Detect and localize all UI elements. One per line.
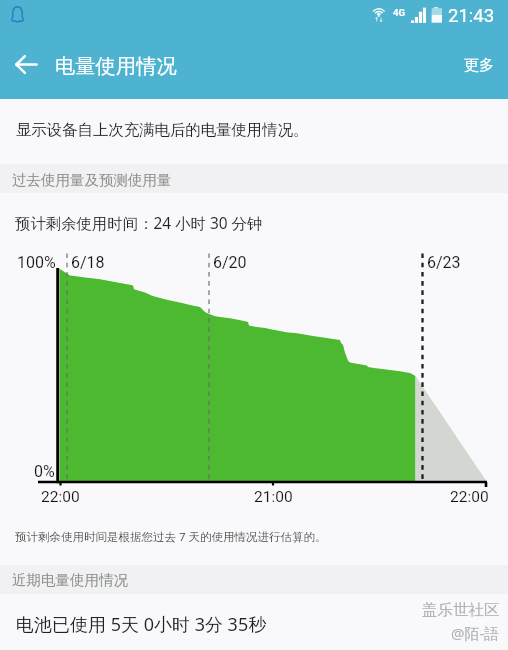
staticText: 6/18 xyxy=(71,253,105,272)
staticText: 100% xyxy=(17,253,56,272)
staticText: 21:00 xyxy=(254,488,293,506)
staticText: 6/20 xyxy=(213,253,247,272)
staticText: @陌-語 xyxy=(451,623,500,643)
staticText: 4G xyxy=(393,7,405,18)
staticText: 预计剩余使用时间是根据您过去 7 天的使用情况进行估算的。 xyxy=(15,529,327,545)
staticText: 0% xyxy=(34,462,55,481)
staticText: 电池已使用 5天 0小时 3分 35秒 xyxy=(16,612,267,637)
staticText: 显示设备自上次充满电后的电量使用情况。 xyxy=(16,120,309,139)
button[interactable]: 更多 xyxy=(449,40,508,90)
staticText: 盖乐世社区 xyxy=(422,600,500,620)
button[interactable]: Back xyxy=(0,39,52,89)
staticText: 22:00 xyxy=(41,488,80,506)
staticText: 预计剩余使用时间：24 小时 30 分钟 xyxy=(15,213,263,234)
staticText: 更多 xyxy=(464,56,494,75)
staticText: 6/23 xyxy=(427,253,461,272)
staticText: 近期电量使用情况 xyxy=(12,571,128,589)
staticText: 22:00 xyxy=(450,488,489,506)
staticText: 过去使用量及预测使用量 xyxy=(12,171,172,189)
staticText: 电量使用情况 xyxy=(55,53,177,79)
staticText: 21:43 xyxy=(448,5,495,27)
